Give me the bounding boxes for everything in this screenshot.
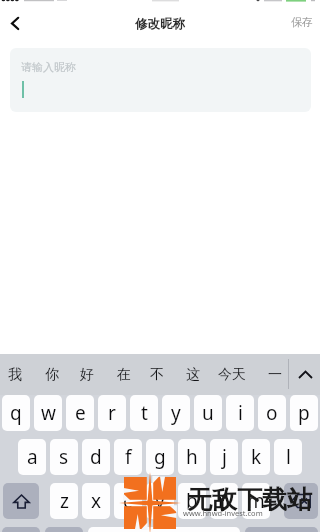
staticText: m xyxy=(247,488,265,514)
button[interactable]: 在 xyxy=(108,354,140,395)
button[interactable]: e xyxy=(66,395,94,431)
button[interactable]: z xyxy=(50,483,78,519)
staticText: www.hnwd-invest.com xyxy=(183,508,263,518)
button[interactable]: Hide keyboard xyxy=(291,354,320,395)
staticText: 一 xyxy=(268,366,282,384)
button[interactable]: s xyxy=(50,439,78,475)
button[interactable]: v xyxy=(146,483,174,519)
staticText: 今天 xyxy=(218,366,246,384)
staticText: 保存 xyxy=(291,15,313,29)
staticText: t xyxy=(141,400,148,426)
button[interactable]: l xyxy=(274,439,302,475)
button[interactable]: 请输入昵称 xyxy=(10,48,311,112)
staticText: s xyxy=(59,444,69,470)
staticText: 这 xyxy=(186,366,200,384)
staticText: q xyxy=(10,400,22,426)
button[interactable]: 好 xyxy=(71,354,103,395)
staticText: x xyxy=(91,488,102,514)
staticText: l xyxy=(286,444,291,470)
staticText: a xyxy=(27,444,38,470)
staticText: j xyxy=(222,444,227,470)
staticText: v xyxy=(155,488,165,514)
staticText: u xyxy=(202,400,214,426)
staticText: i xyxy=(238,400,243,426)
staticText: 修改昵称 xyxy=(135,16,185,32)
button[interactable]: c xyxy=(114,483,142,519)
staticText: w xyxy=(41,400,56,426)
button[interactable]: Delete xyxy=(284,483,318,519)
staticText: b xyxy=(186,488,198,514)
button[interactable]: 今天 xyxy=(214,354,250,395)
button[interactable]: y xyxy=(162,395,190,431)
button[interactable]: a xyxy=(18,439,46,475)
staticText: n xyxy=(218,488,230,514)
button[interactable]: f xyxy=(114,439,142,475)
button[interactable]: r xyxy=(98,395,126,431)
button[interactable]: 保存 xyxy=(284,8,320,40)
button[interactable]: n xyxy=(210,483,238,519)
button[interactable]: Numbers xyxy=(2,527,40,532)
staticText: 请输入昵称 xyxy=(21,60,76,74)
button[interactable]: p xyxy=(290,395,318,431)
button[interactable]: q xyxy=(2,395,30,431)
button[interactable]: g xyxy=(146,439,174,475)
staticText: e xyxy=(75,400,86,426)
button[interactable]: w xyxy=(34,395,62,431)
button[interactable]: 这 xyxy=(177,354,209,395)
button[interactable]: Shift xyxy=(3,483,39,519)
button[interactable]: d xyxy=(82,439,110,475)
button[interactable]: j xyxy=(210,439,238,475)
staticText: h xyxy=(186,444,198,470)
staticText: 在 xyxy=(117,366,131,384)
button[interactable]: x xyxy=(82,483,110,519)
button[interactable]: o xyxy=(258,395,286,431)
staticText: 我 xyxy=(8,366,22,384)
staticText: p xyxy=(298,400,310,426)
staticText: r xyxy=(108,400,116,426)
staticText: o xyxy=(266,400,278,426)
button[interactable]: Space xyxy=(88,527,240,532)
staticText: c xyxy=(123,488,133,514)
button[interactable]: Back xyxy=(0,8,42,40)
staticText: f xyxy=(125,444,132,470)
button[interactable]: i xyxy=(226,395,254,431)
staticText: k xyxy=(251,444,262,470)
staticText: 无敌下载站 xyxy=(187,484,312,515)
staticText: y xyxy=(171,400,181,426)
staticText: z xyxy=(60,488,69,514)
button[interactable]: b xyxy=(178,483,206,519)
staticText: d xyxy=(90,444,102,470)
button[interactable]: 不 xyxy=(141,354,173,395)
button[interactable]: m xyxy=(242,483,270,519)
button[interactable]: 我 xyxy=(0,354,31,395)
button[interactable]: k xyxy=(242,439,270,475)
button[interactable]: Emoji xyxy=(45,527,83,532)
button[interactable]: h xyxy=(178,439,206,475)
button[interactable]: Return xyxy=(245,527,318,532)
staticText: 不 xyxy=(150,366,164,384)
button[interactable]: 一 xyxy=(259,354,291,395)
button[interactable]: u xyxy=(194,395,222,431)
button[interactable]: 你 xyxy=(36,354,68,395)
staticText: g xyxy=(154,444,166,470)
staticText: 你 xyxy=(45,366,59,384)
staticText: 好 xyxy=(80,366,94,384)
button[interactable]: t xyxy=(130,395,158,431)
